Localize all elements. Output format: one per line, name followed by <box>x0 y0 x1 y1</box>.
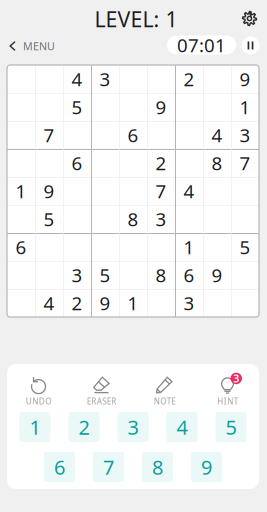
staticText: 6 <box>15 235 26 259</box>
staticText: 8 <box>211 151 222 175</box>
staticText: 3 <box>99 67 110 91</box>
staticText: NOTE <box>154 396 175 407</box>
staticText: 6 <box>71 151 82 175</box>
staticText: 8 <box>127 207 138 231</box>
staticText: 6 <box>183 263 194 287</box>
button[interactable]: 6 <box>44 452 75 482</box>
staticText: 3 <box>239 123 250 147</box>
staticText: 3 <box>183 291 194 315</box>
button[interactable]: 8 <box>142 452 173 482</box>
staticText: 2 <box>183 67 194 91</box>
staticText: 3 <box>71 263 82 287</box>
button[interactable]: 5 <box>215 412 246 442</box>
staticText: 5 <box>225 414 236 440</box>
staticText: 7 <box>239 151 250 175</box>
staticText: 9 <box>239 67 250 91</box>
staticText: 6 <box>127 123 138 147</box>
button[interactable]: 4 <box>166 412 197 442</box>
staticText: 6 <box>54 454 65 480</box>
staticText: 9 <box>155 95 166 119</box>
staticText: 2 <box>71 291 82 315</box>
staticText: 9 <box>99 291 110 315</box>
staticText: 4 <box>71 67 82 91</box>
staticText: 8 <box>155 263 166 287</box>
staticText: 3 <box>233 371 239 386</box>
staticText: 1 <box>127 291 138 315</box>
button[interactable]: ERASER <box>70 369 133 411</box>
staticText: LEVEL: 1 <box>94 5 177 33</box>
staticText: 2 <box>78 414 89 440</box>
button[interactable]: 07:01 <box>167 35 236 54</box>
staticText: 5 <box>239 235 250 259</box>
button[interactable]: 2 <box>68 412 99 442</box>
button[interactable]: 3 <box>196 369 259 411</box>
staticText: 4 <box>43 291 54 315</box>
staticText: 8 <box>152 454 163 480</box>
staticText: 2 <box>155 151 166 175</box>
staticText: 1 <box>29 414 40 440</box>
button[interactable]: 9 <box>191 452 222 482</box>
staticText: 5 <box>99 263 110 287</box>
staticText: 9 <box>201 454 212 480</box>
staticText: 7 <box>103 454 114 480</box>
staticText: ERASER <box>87 396 116 407</box>
button[interactable]: MENU <box>9 33 55 59</box>
staticText: 7 <box>155 179 166 203</box>
button[interactable]: NOTE <box>133 369 196 411</box>
button[interactable]: UNDO <box>7 369 70 411</box>
staticText: 9 <box>43 179 54 203</box>
button[interactable]: 7 <box>93 452 124 482</box>
staticText: 3 <box>127 414 138 440</box>
button[interactable]: Settings <box>234 3 264 33</box>
button[interactable]: 1 <box>19 412 50 442</box>
staticText: 5 <box>43 207 54 231</box>
button[interactable]: Pause <box>241 36 259 54</box>
staticText: 1 <box>239 95 250 119</box>
staticText: 7 <box>43 123 54 147</box>
staticText: 07:01 <box>177 33 226 57</box>
staticText: UNDO <box>26 396 51 407</box>
staticText: 1 <box>15 179 26 203</box>
staticText: 3 <box>155 207 166 231</box>
staticText: MENU <box>23 39 55 53</box>
button[interactable]: 3 <box>117 412 148 442</box>
staticText: 4 <box>176 414 187 440</box>
staticText: 4 <box>183 179 194 203</box>
